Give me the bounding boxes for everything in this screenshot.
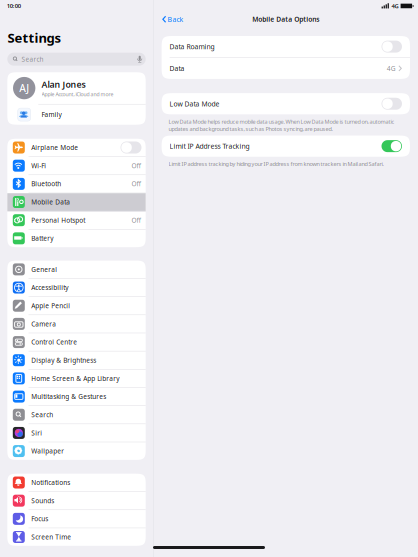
staticText: Sounds — [31, 496, 54, 505]
staticText: Focus — [31, 514, 48, 523]
staticText: Wi-Fi — [31, 161, 46, 170]
staticText: 10:00 — [7, 2, 21, 10]
staticText: Siri — [31, 429, 42, 437]
button[interactable]: Airplane Mode — [7, 139, 146, 157]
button[interactable]: Camera — [7, 315, 146, 333]
staticText: Airplane Mode — [31, 143, 78, 152]
staticText: Battery — [31, 234, 53, 243]
staticText: Control Centre — [31, 338, 77, 346]
button[interactable]: Accessibility — [7, 279, 146, 297]
button[interactable]: Notifications — [7, 474, 146, 492]
button[interactable]: Search — [7, 406, 146, 424]
staticText: Data — [170, 64, 185, 73]
button[interactable]: General — [7, 261, 146, 279]
staticText: Personal Hotspot — [31, 216, 85, 224]
staticText: Off — [131, 180, 140, 188]
staticText: Mobile Data — [31, 198, 70, 206]
button[interactable]: Mobile Data — [7, 193, 146, 211]
button[interactable]: Apple Pencil — [7, 297, 146, 315]
staticText: Apple Pencil — [31, 301, 70, 310]
button[interactable]: Focus — [7, 510, 146, 528]
staticText: Search — [22, 55, 44, 63]
button[interactable]: Home Screen & App Library — [7, 370, 146, 388]
staticText: Display & Brightness — [31, 356, 96, 364]
staticText: Multitasking & Gestures — [31, 392, 106, 401]
staticText: Limit IP Address Tracking — [170, 142, 250, 151]
staticText: Limit IP address tracking by hiding your… — [169, 160, 384, 167]
button[interactable]: Data — [162, 58, 410, 79]
button[interactable]: Personal Hotspot — [7, 211, 146, 230]
button[interactable]: Bluetooth — [7, 175, 146, 193]
button[interactable]: Wi-Fi — [7, 157, 146, 175]
button[interactable]: Family — [7, 104, 146, 125]
staticText: Accessibility — [31, 283, 68, 292]
staticText: Camera — [31, 320, 56, 328]
button[interactable]: Limit IP Address Tracking — [162, 135, 410, 157]
button[interactable]: Wallpaper — [7, 442, 146, 460]
button[interactable]: Display & Brightness — [7, 351, 146, 370]
button[interactable]: Multitasking & Gestures — [7, 388, 146, 406]
button[interactable]: Data Roaming — [162, 36, 410, 58]
staticText: AJ — [19, 81, 29, 95]
button[interactable]: Control Centre — [7, 333, 146, 351]
button[interactable]: Siri — [7, 424, 146, 442]
staticText: Bluetooth — [31, 180, 61, 188]
staticText: Notifications — [31, 478, 70, 487]
staticText: Apple Account, iCloud and more — [42, 91, 114, 98]
staticText: Alan Jones — [42, 78, 86, 90]
staticText: Back — [168, 15, 184, 24]
staticText: Off — [131, 161, 140, 170]
staticText: Wallpaper — [31, 447, 64, 455]
staticText: Screen Time — [31, 533, 71, 541]
staticText: Home Screen & App Library — [31, 374, 119, 383]
staticText: Data Roaming — [170, 42, 215, 51]
staticText: Mobile Data Options — [252, 15, 319, 24]
staticText: 4G — [387, 64, 396, 73]
staticText: Family — [42, 110, 62, 119]
button[interactable]: Screen Time — [7, 528, 146, 546]
staticText: 4G — [391, 2, 398, 10]
staticText: Search — [31, 410, 53, 419]
staticText: Off — [131, 216, 140, 224]
staticText: Low Data Mode helps reduce mobile data u… — [169, 118, 395, 132]
button[interactable]: Back — [154, 12, 184, 27]
staticText: General — [31, 265, 57, 274]
button[interactable]: Sounds — [7, 492, 146, 510]
button[interactable]: AJ — [7, 72, 146, 104]
staticText: Low Data Mode — [170, 99, 220, 108]
button[interactable]: Battery — [7, 230, 146, 247]
staticText: Settings — [7, 29, 61, 46]
button[interactable]: Low Data Mode — [162, 93, 410, 114]
